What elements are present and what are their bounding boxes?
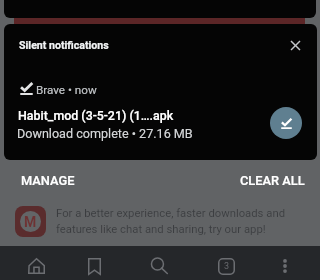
button[interactable]: Open downloaded file: [270, 107, 302, 139]
button[interactable]: Home: [15, 249, 57, 280]
button[interactable]: Brave • now: [4, 60, 317, 160]
staticText: CLEAR ALL: [240, 173, 305, 188]
staticText: Download complete • 27.16 MB: [17, 126, 193, 141]
staticText: Habit_mod (3-5-21) (1….apk: [18, 108, 262, 123]
button[interactable]: More options: [264, 249, 306, 280]
button[interactable]: Close silent notifications: [281, 31, 309, 59]
staticText: For a better experience, faster download…: [56, 207, 286, 235]
staticText: M: [24, 214, 37, 230]
staticText: MANAGE: [21, 173, 75, 188]
button[interactable]: CLEAR ALL: [232, 169, 313, 192]
staticText: Silent notifications: [19, 39, 109, 51]
button[interactable]: MANAGE: [13, 169, 83, 192]
staticText: 3: [224, 261, 230, 272]
button[interactable]: Bookmarks: [73, 249, 115, 280]
staticText: Brave • now: [36, 83, 97, 97]
button[interactable]: Search: [138, 249, 180, 280]
button[interactable]: Tabs, 3 open: [205, 249, 247, 280]
